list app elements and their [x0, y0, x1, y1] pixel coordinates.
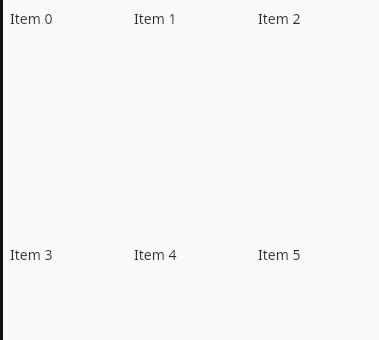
button[interactable]: Item 0 [3, 0, 127, 236]
staticText: Item 1 [134, 9, 177, 28]
button[interactable]: Item 1 [127, 0, 251, 236]
button[interactable]: Item 3 [3, 236, 127, 340]
staticText: Item 2 [258, 9, 301, 28]
staticText: Item 4 [134, 245, 177, 264]
staticText: Item 3 [10, 245, 53, 264]
button[interactable]: Item 5 [251, 236, 379, 340]
staticText: Item 0 [10, 9, 53, 28]
button[interactable]: Item 4 [127, 236, 251, 340]
button[interactable]: Item 2 [251, 0, 379, 236]
staticText: Item 5 [258, 245, 301, 264]
